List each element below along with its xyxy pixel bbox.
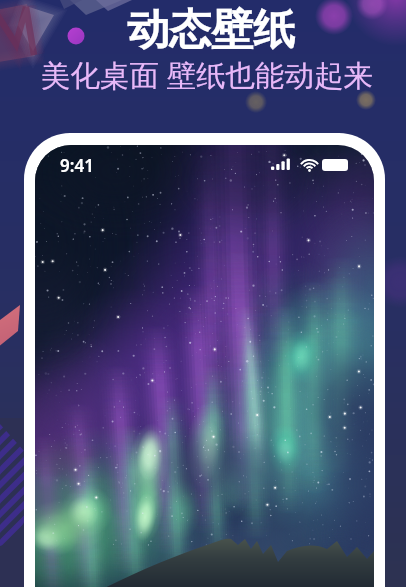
- staticText: 9:41: [60, 154, 94, 177]
- staticText: 动态壁纸: [8, 4, 406, 57]
- staticText: 美化桌面 壁纸也能动起来: [4, 54, 406, 94]
